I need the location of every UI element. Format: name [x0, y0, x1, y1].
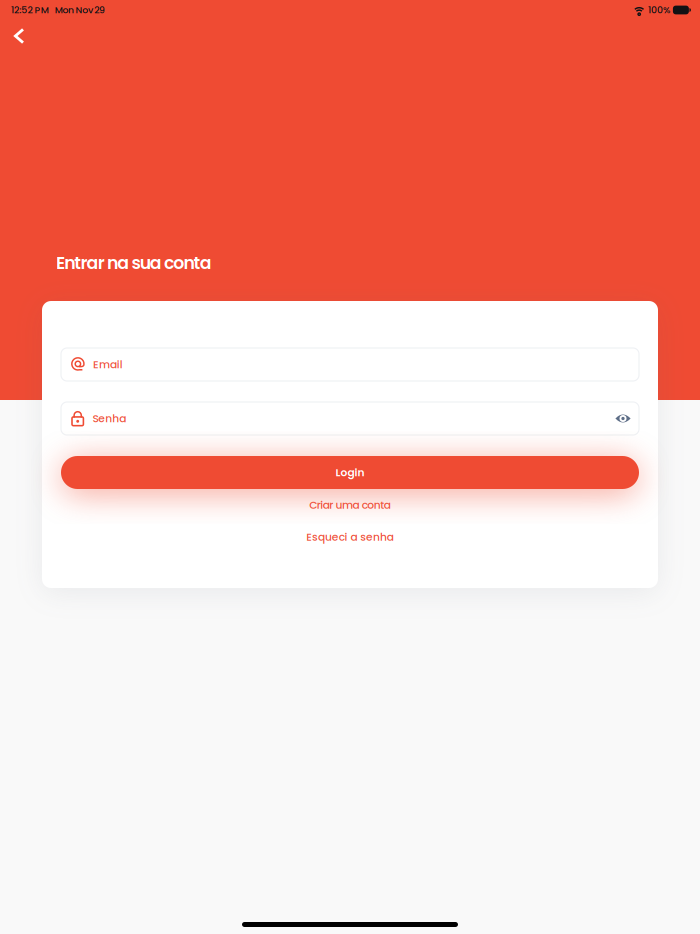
staticText: Senha [92, 411, 126, 426]
staticText: Login [335, 465, 364, 480]
staticText: Email [93, 357, 123, 372]
staticText: Esqueci a senha [306, 529, 394, 544]
staticText: 12:52 PM [11, 3, 49, 17]
button[interactable]: Esqueci a senha [61, 525, 639, 549]
button[interactable]: Back [0, 20, 40, 52]
button[interactable]: Criar uma conta [61, 493, 639, 517]
staticText: 100% [648, 3, 670, 17]
staticText: Criar uma conta [309, 497, 391, 512]
button[interactable]: Show password [607, 404, 631, 433]
staticText: Mon Nov 29 [55, 3, 105, 17]
staticText: Entrar na sua conta [56, 251, 212, 275]
button[interactable]: Login [61, 456, 639, 489]
